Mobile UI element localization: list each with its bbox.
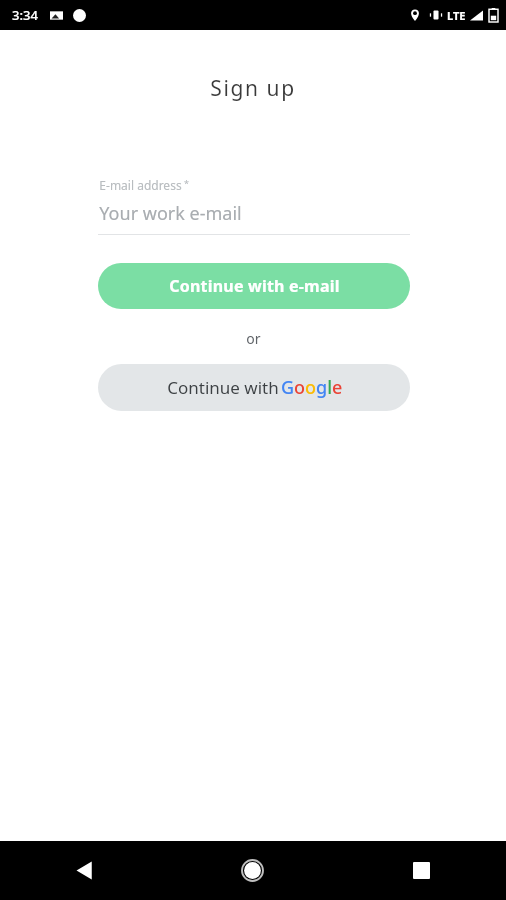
staticText: Sign up: [210, 74, 296, 103]
staticText: LTE: [447, 8, 466, 23]
button[interactable]: Recent apps: [337, 841, 506, 900]
staticText: Google: [281, 375, 343, 400]
staticText: or: [246, 329, 261, 348]
staticText: Your work e-mail: [99, 201, 242, 226]
staticText: Continue with e-mail: [169, 275, 340, 297]
button[interactable]: Back: [0, 841, 168, 900]
staticText: Continue with: [165, 376, 281, 399]
staticText: *: [184, 177, 189, 189]
button[interactable]: Your work e-mail: [99, 201, 410, 226]
button[interactable]: Continue with e-mail: [98, 263, 410, 309]
staticText: E-mail address: [99, 177, 182, 193]
staticText: 3:34: [12, 6, 38, 24]
button[interactable]: Continue with: [98, 364, 410, 411]
button[interactable]: Home: [168, 841, 337, 900]
